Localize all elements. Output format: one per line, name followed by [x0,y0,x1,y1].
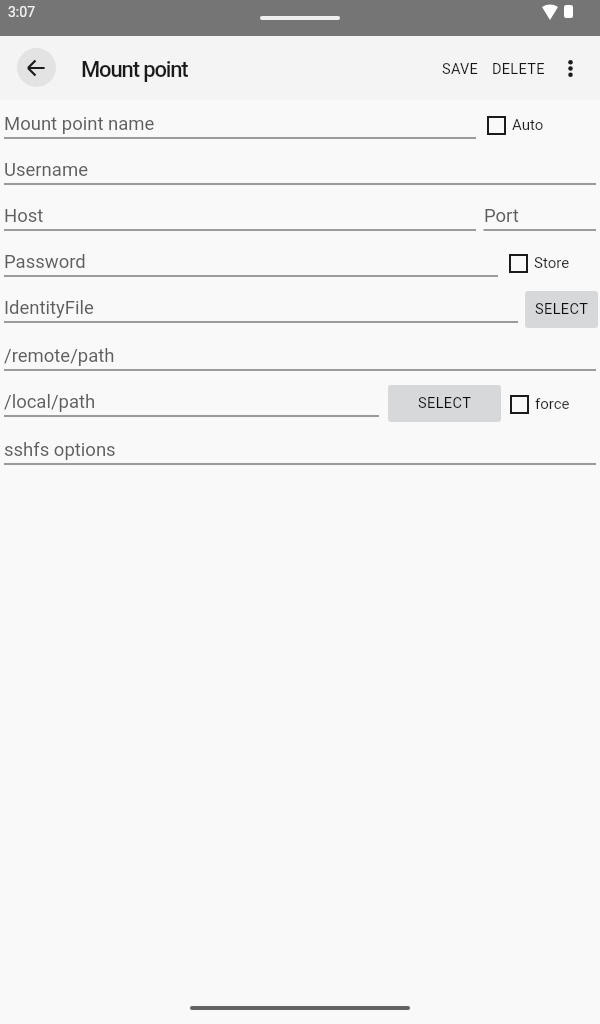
staticText: DELETE [492,60,545,77]
staticText: Auto [512,116,544,134]
button[interactable]: Mount point name [4,113,155,135]
button[interactable]: sshfs options [4,439,116,461]
button[interactable]: DELETE [485,50,551,86]
staticText: IdentityFile [4,297,94,319]
button[interactable]: /local/path [4,391,96,413]
button[interactable]: Port [484,205,519,227]
button[interactable]: SAVE [436,50,484,86]
staticText: sshfs options [4,439,116,461]
staticText: 3:07 [8,4,35,20]
staticText: force [535,395,570,413]
staticText: /local/path [4,391,96,413]
staticText: SAVE [442,60,479,77]
staticText: Mount point name [4,113,155,135]
staticText: Mount point [81,57,188,83]
staticText: Host [4,205,44,227]
button[interactable]: force [510,390,570,418]
button[interactable]: Auto [487,111,544,139]
staticText: SELECT [535,300,589,317]
button[interactable]: Store [509,249,570,277]
staticText: Store [534,254,570,272]
button[interactable]: /remote/path [4,345,115,367]
staticText: SELECT [418,394,472,411]
staticText: Port [484,205,519,227]
button[interactable]: Back [17,48,56,87]
staticText: /remote/path [4,345,115,367]
button[interactable]: IdentityFile [4,297,94,319]
staticText: Username [4,159,88,181]
button[interactable]: Username [4,159,88,181]
button[interactable]: SELECT [525,291,598,328]
button[interactable]: Password [4,251,86,273]
button[interactable]: More options [548,46,592,90]
staticText: Password [4,251,86,273]
button[interactable]: Host [4,205,44,227]
button[interactable]: SELECT [388,385,501,422]
